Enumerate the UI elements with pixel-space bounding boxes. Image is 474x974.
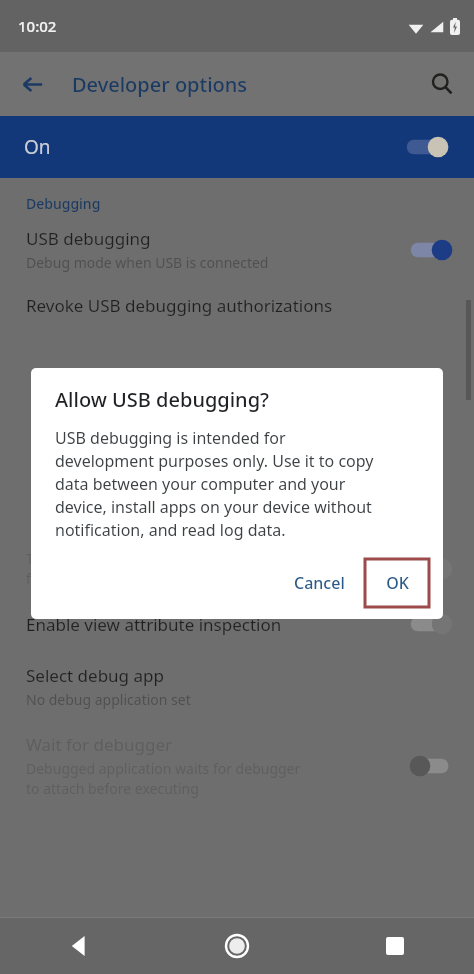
button[interactable]: Home [158, 918, 316, 974]
staticText: No debug application set [26, 690, 191, 709]
staticText: Track all GNSS constellations and freque… [26, 549, 243, 588]
button[interactable]: Toggle [408, 236, 454, 264]
staticText: Debugged application waits for debugger … [26, 759, 301, 798]
button[interactable]: OK [365, 559, 429, 607]
button[interactable]: On [0, 116, 474, 178]
button[interactable]: Toggle [408, 610, 454, 638]
button[interactable]: Back [0, 918, 158, 974]
button[interactable]: Enable view attribute inspection [0, 610, 474, 638]
staticText: Cancel [294, 572, 345, 594]
button[interactable]: Recents [316, 918, 474, 974]
staticText: Enable view attribute inspection [26, 613, 282, 636]
staticText: Developer options [72, 71, 248, 98]
button[interactable]: Toggle [404, 133, 450, 161]
staticText: USB debugging is intended for developmen… [55, 427, 374, 541]
staticText: 10:02 [18, 16, 57, 36]
staticText: Wait for debugger [26, 733, 173, 756]
button[interactable]: USB debugging [0, 227, 474, 272]
staticText: Revoke USB debugging authorizations [26, 294, 333, 317]
staticText: Select debug app [26, 664, 164, 687]
button[interactable]: Back [8, 60, 56, 108]
button[interactable]: Cancel [280, 563, 359, 603]
staticText: USB debugging [26, 227, 151, 250]
button[interactable]: Search [418, 60, 466, 108]
staticText: Debug mode when USB is connected [26, 253, 269, 272]
staticText: Debugging [26, 194, 474, 213]
staticText: Allow USB debugging? [55, 386, 269, 413]
button[interactable]: Select debug app [0, 664, 474, 709]
button[interactable]: Wait for debugger [0, 733, 474, 798]
staticText: On [24, 134, 404, 160]
button[interactable]: Revoke USB debugging authorizations [0, 294, 474, 317]
staticText: OK [386, 572, 409, 594]
button[interactable]: Track all GNSS constellations and freque… [0, 549, 474, 588]
button[interactable]: Toggle [408, 555, 454, 583]
button[interactable]: Toggle [408, 752, 454, 780]
